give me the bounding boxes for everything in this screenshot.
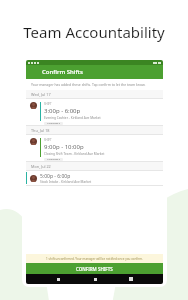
- staticText: CONFIRM SHIFTS: [76, 266, 113, 272]
- staticText: SHIFT: [44, 138, 52, 142]
- staticText: Your manager has added these shifts. Tap…: [31, 82, 146, 87]
- staticText: 1 shift unconfirmed. Your manager will b…: [46, 257, 143, 261]
- button[interactable]: CONFIRM: [44, 122, 63, 125]
- staticText: CONFIRM: [47, 159, 60, 160]
- button[interactable]: SHIFT: [26, 135, 163, 161]
- staticText: 5:00p - 6:00p: [40, 173, 71, 180]
- button[interactable]: CONFIRM SHIFTS: [26, 263, 163, 274]
- staticText: Mon, Jul 22: [31, 164, 51, 169]
- button[interactable]: Home: [90, 274, 100, 284]
- staticText: Stock Intake - Kirkland Ave Market: [40, 180, 92, 184]
- staticText: Thu, Jul 18: [31, 128, 50, 133]
- staticText: CONFIRM: [47, 123, 60, 124]
- staticText: SHIFT: [44, 102, 52, 106]
- button[interactable]: Confirm Shifts: [26, 65, 163, 79]
- staticText: Team Accountability: [0, 22, 188, 42]
- staticText: 3:00p - 6:00p: [44, 107, 81, 115]
- staticText: Confirm Shifts: [42, 68, 83, 76]
- button[interactable]: 5:00p - 6:00p: [26, 171, 163, 185]
- staticText: Wed, Jul 17: [31, 92, 51, 97]
- button[interactable]: SHIFT: [26, 99, 163, 125]
- staticText: Closing Shift Team - Kirkland Ave Market: [44, 152, 105, 156]
- staticText: Evening Cashier - Kirkland Ave Market: [44, 116, 101, 120]
- button[interactable]: Recent apps: [126, 274, 136, 284]
- staticText: 9:00p - 10:00p: [44, 143, 84, 151]
- button[interactable]: CONFIRM: [44, 158, 63, 161]
- button[interactable]: Back: [53, 274, 63, 284]
